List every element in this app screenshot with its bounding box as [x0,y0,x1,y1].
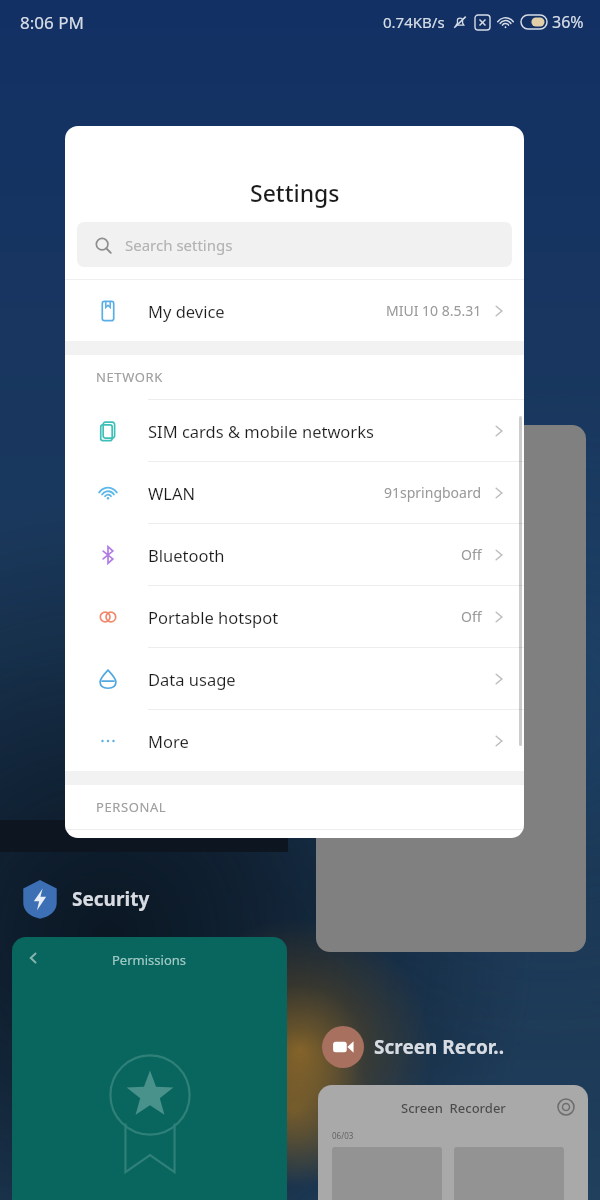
staticText: PERSONAL [96,798,167,816]
staticText: NETWORK [96,368,163,386]
staticText: Portable hotspot [148,606,279,628]
button[interactable]: SIM cards & mobile networks [65,400,524,461]
button[interactable]: My device [65,280,524,341]
staticText: More [148,730,189,752]
staticText: Off [461,545,482,564]
staticText: Bluetooth [148,544,225,566]
button[interactable] [316,425,586,952]
other: Wi-Fi [497,14,514,31]
other: Silent [452,14,468,30]
button[interactable]: WLAN [65,462,524,523]
button[interactable]: More [65,710,524,771]
staticText: 8:06 PM [20,11,84,34]
staticText: WLAN [148,482,196,504]
button[interactable]: Search settings [77,222,512,267]
staticText: Screen Recorder [401,1099,506,1117]
staticText: MIUI 10 8.5.31 [386,301,482,320]
staticText: SIM cards & mobile networks [148,420,374,442]
other: Battery 36 percent [521,15,547,29]
staticText: 36% [552,11,584,33]
staticText: 06/03 [332,1130,354,1141]
staticText: Security [72,886,150,912]
staticText: 0.74KB/s [383,12,445,32]
other: No SIM [475,15,490,30]
staticText: My device [148,300,225,322]
staticText: Search settings [125,235,233,255]
staticText: Data usage [148,668,236,690]
button[interactable]: Portable hotspot [65,586,524,647]
button[interactable]: Permissions [12,937,287,1200]
staticText: Screen Recor.. [374,1034,504,1060]
staticText: Off [461,607,482,626]
staticText: Permissions [112,951,187,969]
button[interactable]: Screen Recorder [318,1085,588,1200]
button[interactable]: Screen Recor.. [322,1026,504,1068]
button[interactable]: Bluetooth [65,524,524,585]
button[interactable]: Data usage [65,648,524,709]
staticText: 91springboard [384,483,482,502]
staticText: Settings [250,177,340,208]
button[interactable]: Security [18,877,150,921]
